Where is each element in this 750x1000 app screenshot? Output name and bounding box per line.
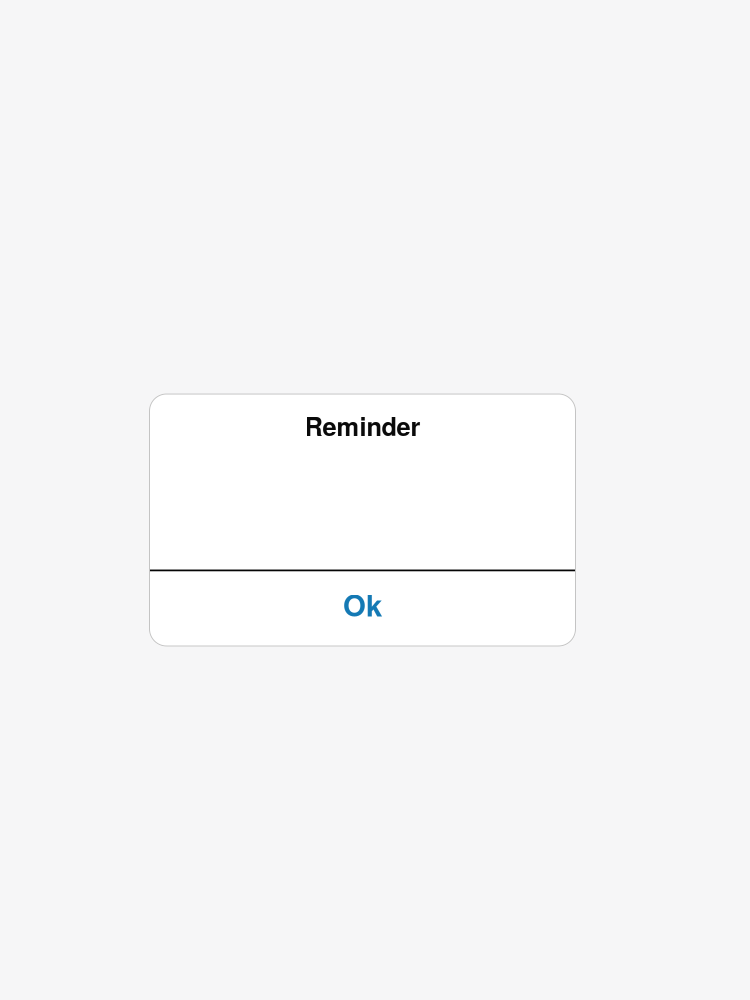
staticText: Reminder — [304, 407, 420, 444]
button[interactable]: Ok — [149, 571, 576, 646]
staticText: Ok — [343, 583, 382, 625]
